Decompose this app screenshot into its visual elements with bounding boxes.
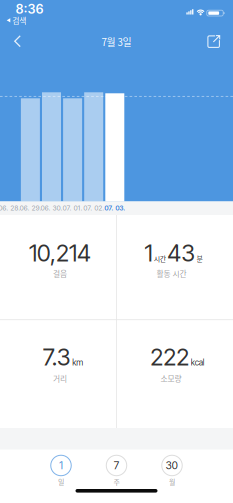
button[interactable]: 30: [162, 455, 182, 487]
staticText: 30: [165, 459, 178, 472]
staticText: 7.3: [43, 343, 71, 371]
button[interactable]: 07. 01.: [63, 204, 83, 212]
staticText: 월: [169, 477, 175, 487]
staticText: 222: [150, 343, 189, 371]
button[interactable]: Share: [206, 33, 222, 49]
staticText: 10,214: [29, 239, 91, 267]
staticText: 주: [113, 477, 119, 487]
button[interactable]: Back: [6, 33, 28, 50]
staticText: 43: [167, 239, 195, 267]
staticText: 1: [59, 459, 63, 472]
staticText: 06. 28.: [0, 204, 20, 212]
button[interactable]: 07. 02.: [83, 204, 104, 212]
staticText: 7월 3일: [101, 35, 131, 49]
staticText: 06. 29.: [19, 204, 41, 212]
button[interactable]: 06. 30.: [40, 204, 62, 212]
staticText: 07. 02.: [83, 204, 104, 212]
staticText: 8:36: [15, 1, 43, 17]
staticText: 시간: [154, 253, 166, 263]
staticText: 분: [196, 253, 202, 263]
button[interactable]: 07. 03.: [104, 204, 125, 212]
staticText: 검색: [12, 15, 26, 26]
button[interactable]: 06. 28.: [0, 204, 20, 212]
button[interactable]: 06. 29.: [19, 204, 41, 212]
staticText: 06. 30.: [40, 204, 62, 212]
staticText: 07. 01.: [63, 204, 83, 212]
staticText: 걸음: [53, 268, 67, 279]
staticText: 1: [145, 239, 153, 267]
staticText: kcal: [191, 357, 205, 368]
button[interactable]: 1: [51, 455, 71, 487]
staticText: 거리: [53, 373, 67, 384]
staticText: 07. 03.: [104, 204, 125, 212]
staticText: 활동 시간: [156, 268, 186, 279]
staticText: 소모량: [160, 373, 181, 384]
staticText: 일: [58, 477, 64, 487]
staticText: 7: [113, 459, 119, 472]
button[interactable]: 7: [106, 455, 127, 487]
staticText: km: [72, 357, 83, 368]
